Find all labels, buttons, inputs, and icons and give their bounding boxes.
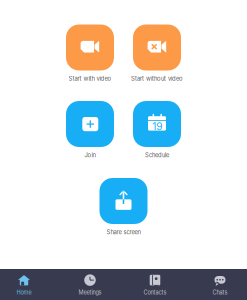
button[interactable]: Home — [16, 274, 31, 296]
staticText: Start with video — [68, 75, 111, 82]
staticText: Share screen — [106, 228, 140, 236]
button[interactable]: Chats — [212, 274, 227, 296]
button[interactable]: Start with video — [0, 0, 247, 300]
staticText: 19 — [152, 120, 162, 133]
button[interactable]: Contacts — [143, 274, 166, 296]
staticText: Chats — [212, 289, 227, 296]
button[interactable]: Join — [0, 0, 247, 300]
button[interactable]: Start without video — [0, 0, 247, 300]
button[interactable]: 19 — [0, 0, 247, 300]
button[interactable]: Share screen — [0, 0, 247, 300]
staticText: Contacts — [143, 289, 166, 296]
staticText: Join — [84, 151, 95, 159]
staticText: Start without video — [131, 75, 183, 82]
staticText: Meetings — [78, 289, 101, 296]
staticText: Home — [16, 289, 31, 296]
button[interactable]: Meetings — [78, 274, 101, 296]
staticText: Schedule — [145, 151, 169, 159]
